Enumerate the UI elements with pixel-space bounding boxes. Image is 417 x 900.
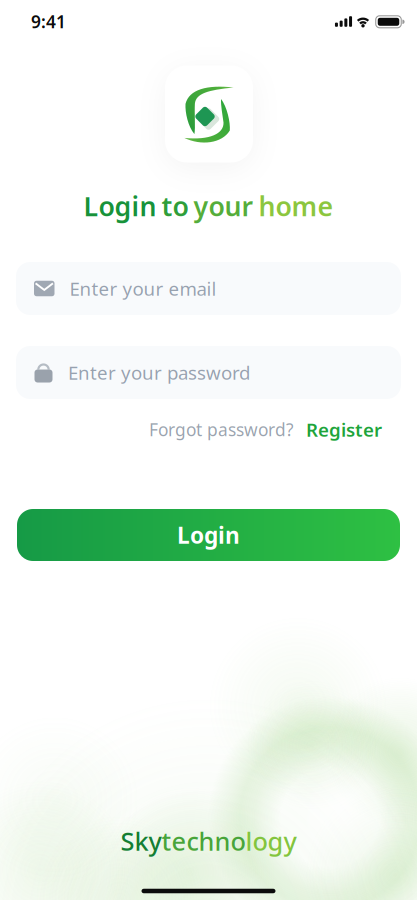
staticText: Login [177,520,240,550]
staticText: to [161,188,188,224]
button[interactable]: Register [306,417,382,442]
button[interactable]: Enter your email [16,262,401,315]
staticText: Login [83,188,156,224]
staticText: Register [306,417,382,442]
staticText: techno [161,824,245,858]
staticText: 9:41 [31,10,66,33]
staticText: Enter your email [69,276,216,301]
staticText: Forgot password? [149,418,294,441]
button[interactable]: Login [17,509,400,561]
staticText: your [193,188,253,224]
button[interactable]: Enter your password [16,346,401,399]
staticText: Enter your password [68,360,250,385]
button[interactable]: Forgot password? [149,418,294,441]
staticText: logy [245,824,296,858]
staticText: Sky [120,824,161,858]
staticText: home [258,188,333,224]
